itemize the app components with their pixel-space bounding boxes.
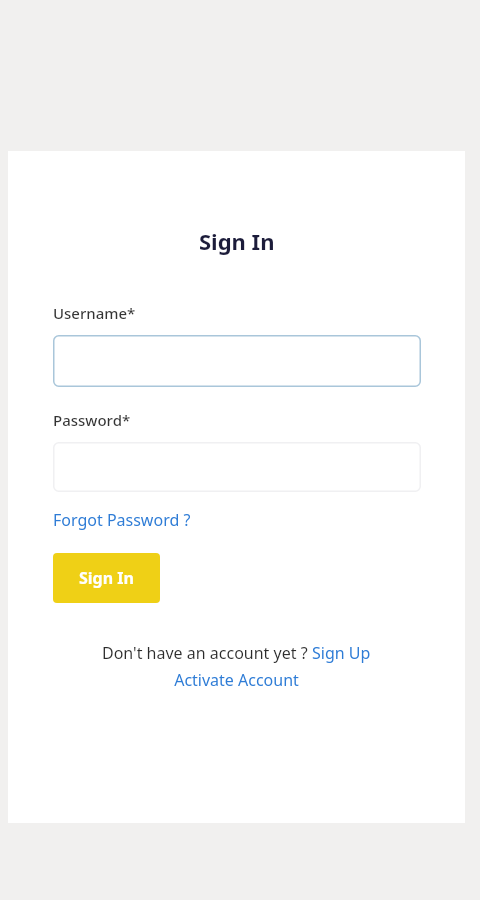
button[interactable]: Activate Account	[174, 669, 299, 691]
staticText: Sign In	[79, 567, 134, 589]
staticText: Username*	[53, 303, 136, 323]
staticText: Activate Account	[174, 669, 299, 691]
staticText: Forgot Password ?	[53, 509, 191, 531]
button[interactable]: Password input field	[53, 442, 421, 492]
button[interactable]: Sign In	[53, 553, 160, 603]
button[interactable]: Sign Up	[312, 642, 371, 664]
staticText: Password*	[53, 410, 131, 430]
button[interactable]: Username input field	[53, 335, 421, 387]
staticText: Sign In	[199, 226, 275, 256]
button[interactable]: Forgot Password ?	[53, 509, 191, 531]
staticText: Don't have an account yet ?	[102, 642, 312, 664]
staticText: Sign Up	[312, 642, 371, 664]
